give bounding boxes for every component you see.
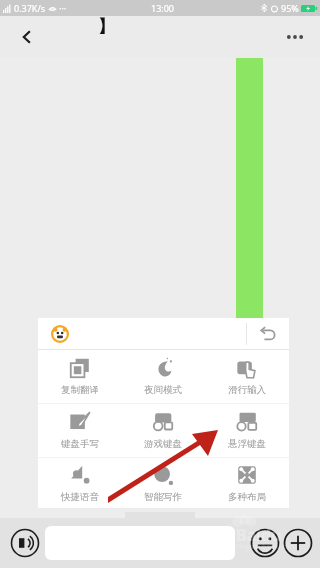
button[interactable]: 游戏键盘 [121, 404, 205, 457]
staticText: jingyan.baidu.com [236, 542, 297, 552]
button[interactable]: Assistant [44, 318, 75, 349]
button[interactable]: Back [247, 318, 289, 349]
button[interactable]: Move keyboard [125, 512, 195, 550]
staticText: 复制翻译 [61, 384, 99, 396]
staticText: 键盘手写 [61, 438, 99, 450]
staticText: 滑行输入 [228, 384, 266, 396]
staticText: 多种布局 [228, 491, 266, 503]
button[interactable]: 夜间模式 [121, 350, 205, 403]
button[interactable]: 悬浮键盘 [205, 404, 289, 457]
button[interactable]: 复制翻译 [38, 350, 121, 403]
button[interactable]: 滑行输入 [205, 350, 289, 403]
button[interactable]: 多种布局 [205, 458, 289, 508]
staticText: ··· [59, 2, 67, 14]
button[interactable]: 快捷语音 [38, 458, 121, 508]
staticText: 95% [281, 2, 299, 14]
staticText: 快捷语音 [61, 491, 99, 503]
staticText: 悬浮键盘 [228, 438, 266, 450]
button[interactable]: Voice input [6, 524, 44, 562]
staticText: Baidu [236, 524, 282, 546]
staticText: 】 [98, 16, 115, 37]
button[interactable]: 键盘手写 [38, 404, 121, 457]
staticText: 13:00 [151, 2, 175, 14]
staticText: 0.37K/s [14, 2, 46, 14]
staticText: 智能写作 [144, 491, 182, 503]
button[interactable]: 智能写作 [121, 458, 205, 508]
button[interactable]: More options [274, 16, 316, 58]
button[interactable]: Add [279, 524, 317, 562]
button[interactable]: Emoji [246, 524, 284, 562]
button[interactable]: Back [6, 16, 48, 58]
staticText: 游戏键盘 [144, 438, 182, 450]
staticText: 夜间模式 [144, 384, 182, 396]
